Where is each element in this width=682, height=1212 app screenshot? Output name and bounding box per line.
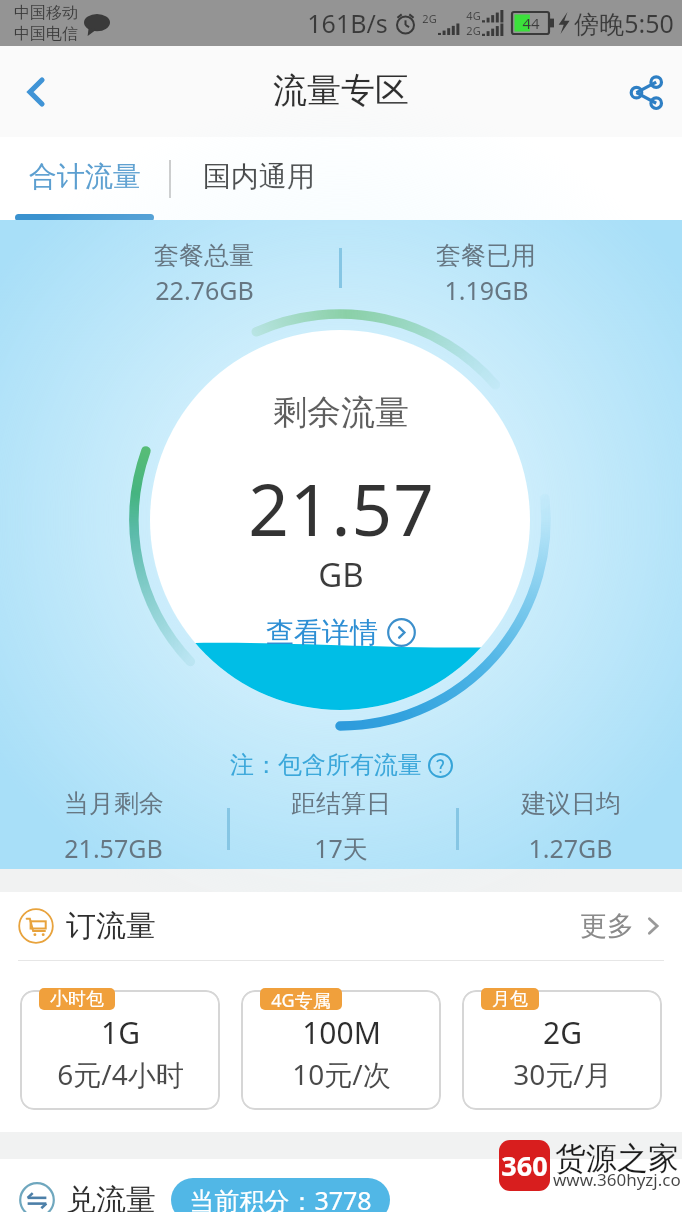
staticText: www.360hyzj.com <box>553 1168 682 1191</box>
staticText: 17天 <box>314 831 368 865</box>
staticText: 6元/4小时 <box>57 1055 184 1093</box>
staticText: 订流量 <box>66 907 156 945</box>
staticText: 货源之家 <box>555 1139 682 1178</box>
button[interactable]: 订流量 <box>0 892 682 959</box>
staticText: 2G <box>422 11 437 26</box>
button[interactable]: 查看详情 <box>266 615 416 650</box>
button[interactable]: Share <box>610 56 682 128</box>
staticText: 更多 <box>580 909 634 943</box>
staticText: GB <box>318 552 364 597</box>
staticText: 1.19GB <box>444 273 529 307</box>
staticText: 注：包含所有流量 <box>230 750 422 780</box>
staticText: 4G专属 <box>271 988 331 1010</box>
staticText: 100M <box>302 1012 381 1053</box>
staticText: 当月剩余 <box>64 788 164 819</box>
button[interactable]: 1G <box>20 990 220 1110</box>
button[interactable]: Back <box>0 56 72 128</box>
staticText: 21.57 <box>248 460 435 557</box>
staticText: 套餐总量 <box>154 240 254 271</box>
staticText: 10元/次 <box>292 1055 391 1093</box>
staticText: 剩余流量 <box>273 391 409 434</box>
staticText: 距结算日 <box>291 788 391 819</box>
staticText: 360 <box>501 1147 548 1184</box>
button[interactable]: 国内通用 <box>171 137 347 221</box>
staticText: 查看详情 <box>266 615 378 650</box>
staticText: 161B/s <box>307 6 388 40</box>
staticText: 小时包 <box>50 988 104 1010</box>
button[interactable]: 2G <box>462 990 662 1110</box>
staticText: 22.76GB <box>155 273 254 307</box>
staticText: 2G <box>543 1012 582 1053</box>
button[interactable]: 更多 <box>580 909 666 943</box>
staticText: 流量专区 <box>273 69 409 112</box>
staticText: 兑流量 <box>66 1181 156 1212</box>
staticText: 4G <box>466 8 481 23</box>
staticText: 2G <box>466 23 481 38</box>
staticText: 1.27GB <box>528 831 613 865</box>
staticText: 中国电信 <box>14 24 78 44</box>
staticText: 傍晚5:50 <box>574 6 674 40</box>
button[interactable]: 100M <box>241 990 441 1110</box>
button[interactable]: 合计流量 <box>0 137 169 221</box>
staticText: 21.57GB <box>64 831 163 865</box>
staticText: 30元/月 <box>513 1055 612 1093</box>
staticText: 1G <box>101 1012 140 1053</box>
staticText: 合计流量 <box>29 159 141 194</box>
staticText: 中国移动 <box>14 3 78 23</box>
staticText: 44 <box>522 13 540 33</box>
button[interactable]: 兑流量 <box>0 1173 682 1212</box>
staticText: 建议日均 <box>521 788 621 819</box>
button[interactable]: 注：包含所有流量 <box>230 750 453 780</box>
staticText: 月包 <box>492 988 528 1010</box>
staticText: 套餐已用 <box>436 240 536 271</box>
staticText: 国内通用 <box>203 159 315 194</box>
staticText: 当前积分：3778 <box>189 1183 372 1212</box>
